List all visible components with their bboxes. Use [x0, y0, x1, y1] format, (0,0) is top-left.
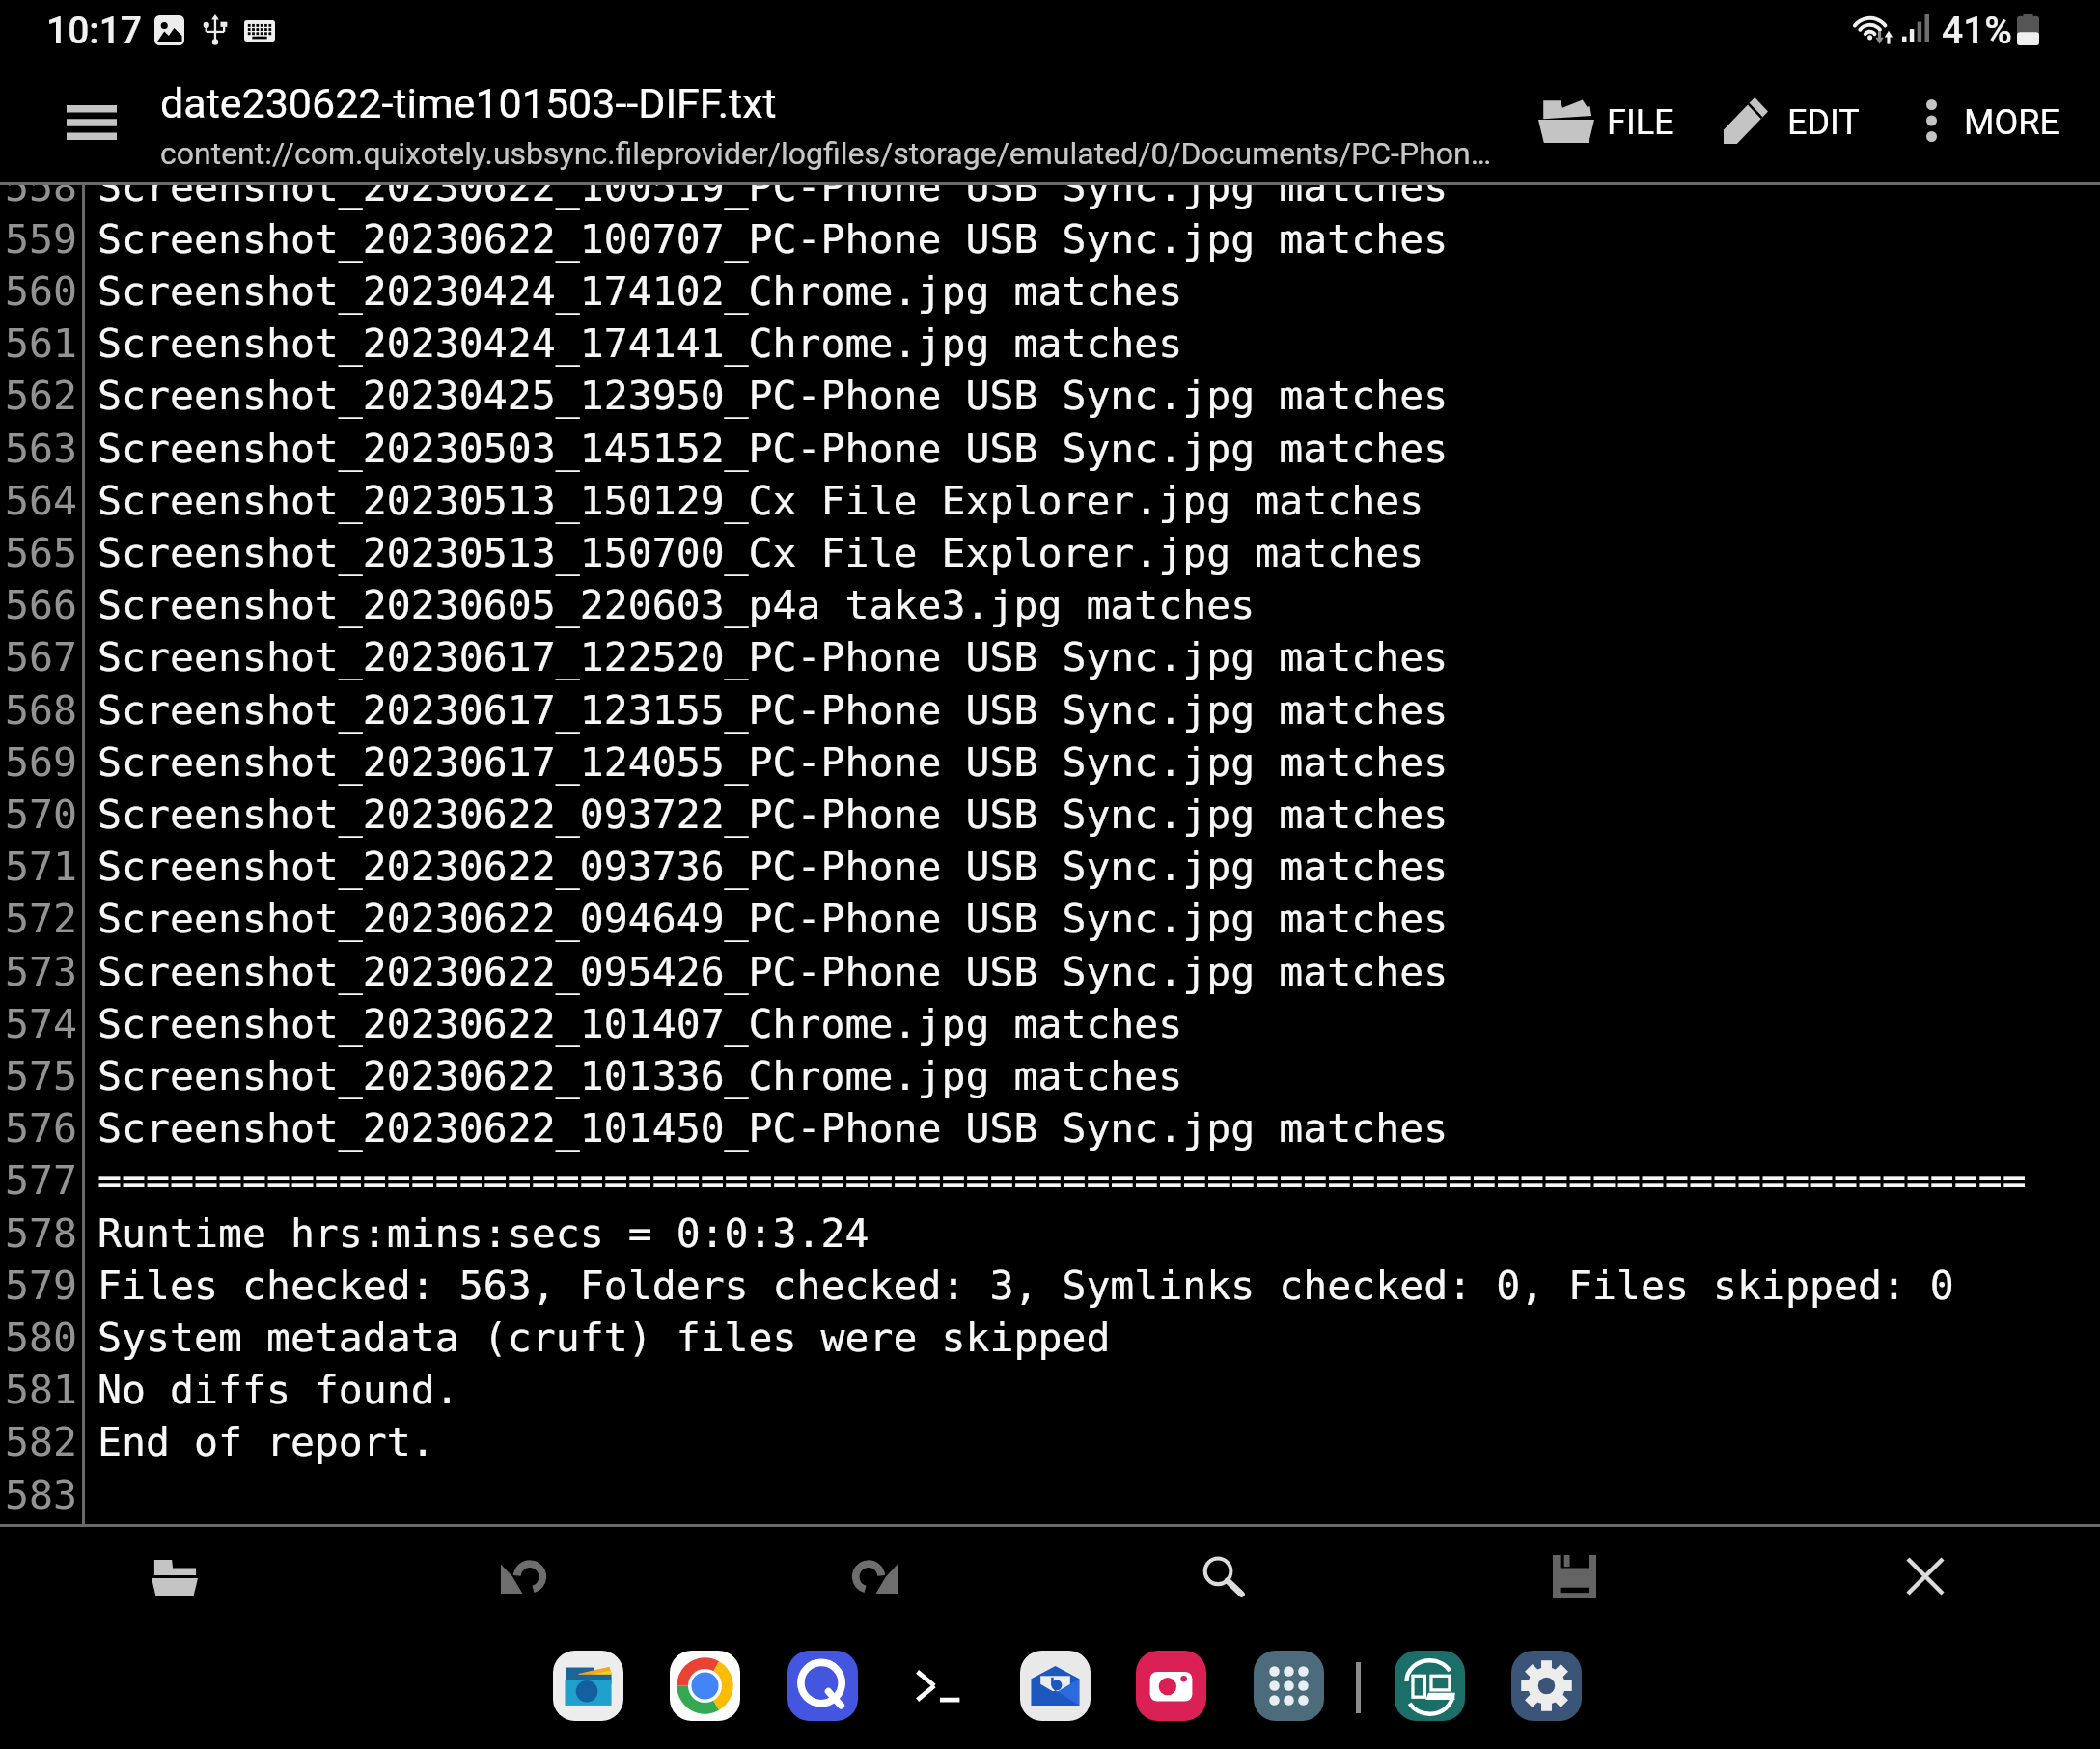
button[interactable]: Settings: [1511, 1651, 1582, 1721]
button[interactable]: Camera: [1136, 1651, 1206, 1721]
staticText: 563: [2, 425, 77, 471]
staticText: 583: [2, 1471, 77, 1517]
staticText: Screenshot_20230622_100519_PC-Phone USB …: [97, 185, 1449, 209]
staticText: Screenshot_20230503_145152_PC-Phone USB …: [97, 425, 1449, 471]
staticText: Screenshot_20230617_122520_PC-Phone USB …: [97, 633, 1449, 680]
staticText: Screenshot_20230622_101336_Chrome.jpg ma…: [97, 1052, 1183, 1098]
staticText: 559: [2, 215, 77, 262]
staticText: 560: [2, 267, 77, 314]
button[interactable]: Undo: [349, 1527, 699, 1625]
staticText: 567: [2, 633, 77, 680]
staticText: Screenshot_20230513_150700_Cx File Explo…: [97, 529, 1424, 575]
staticText: Screenshot_20230424_174102_Chrome.jpg ma…: [97, 267, 1183, 314]
button[interactable]: Mail: [1020, 1651, 1091, 1721]
staticText: 41%: [1942, 9, 2012, 53]
button[interactable]: 558: [0, 185, 2100, 1524]
staticText: 582: [2, 1418, 77, 1464]
button[interactable]: FILE: [1538, 79, 1674, 162]
staticText: Screenshot_20230424_174141_Chrome.jpg ma…: [97, 319, 1183, 366]
button[interactable]: USB Sync: [1395, 1651, 1465, 1721]
staticText: EDIT: [1787, 102, 1860, 143]
staticText: Screenshot_20230622_101407_Chrome.jpg ma…: [97, 1000, 1183, 1046]
button[interactable]: Terminal: [903, 1651, 974, 1721]
staticText: ========================================…: [97, 1156, 2027, 1203]
button[interactable]: Quixotely: [787, 1651, 858, 1721]
staticText: Screenshot_20230622_100707_PC-Phone USB …: [97, 215, 1449, 262]
staticText: 576: [2, 1104, 77, 1151]
staticText: Screenshot_20230513_150129_Cx File Explo…: [97, 477, 1424, 523]
staticText: 575: [2, 1052, 77, 1098]
staticText: 578: [2, 1209, 77, 1256]
staticText: 562: [2, 372, 77, 418]
staticText: Files checked: 563, Folders checked: 3, …: [97, 1262, 1954, 1308]
staticText: Screenshot_20230605_220603_p4a take3.jpg…: [97, 581, 1256, 627]
staticText: Screenshot_20230622_094649_PC-Phone USB …: [97, 895, 1449, 941]
button[interactable]: Close: [1750, 1527, 2100, 1625]
staticText: 568: [2, 686, 77, 733]
staticText: 577: [2, 1156, 77, 1203]
staticText: 574: [2, 1000, 77, 1046]
staticText: Screenshot_20230425_123950_PC-Phone USB …: [97, 372, 1449, 418]
staticText: 561: [2, 319, 77, 366]
staticText: 558: [2, 185, 77, 209]
staticText: 10:17: [46, 9, 143, 53]
button[interactable]: Cx File Explorer: [553, 1651, 623, 1721]
staticText: content://com.quixotely.usbsync.fileprov…: [160, 135, 1492, 172]
staticText: Screenshot_20230622_101450_PC-Phone USB …: [97, 1104, 1449, 1151]
button[interactable]: Open: [0, 1527, 349, 1625]
staticText: Screenshot_20230622_093736_PC-Phone USB …: [97, 843, 1449, 889]
staticText: 571: [2, 843, 77, 889]
button[interactable]: Chrome: [670, 1651, 740, 1721]
button[interactable]: MORE: [1926, 79, 2059, 162]
staticText: 565: [2, 529, 77, 575]
staticText: date230622-time101503--DIFF.txt: [160, 79, 777, 127]
staticText: 569: [2, 738, 77, 785]
staticText: Screenshot_20230622_095426_PC-Phone USB …: [97, 948, 1449, 994]
staticText: No diffs found.: [97, 1366, 459, 1412]
staticText: System metadata (cruft) files were skipp…: [97, 1314, 1111, 1360]
staticText: 580: [2, 1314, 77, 1360]
staticText: 566: [2, 581, 77, 627]
button[interactable]: Search: [1049, 1527, 1399, 1625]
staticText: 564: [2, 477, 77, 523]
button[interactable]: Apps: [1254, 1651, 1324, 1721]
staticText: 579: [2, 1262, 77, 1308]
staticText: MORE: [1964, 102, 2059, 143]
staticText: Screenshot_20230617_123155_PC-Phone USB …: [97, 686, 1449, 733]
staticText: 581: [2, 1366, 77, 1412]
staticText: End of report.: [97, 1418, 435, 1464]
staticText: Screenshot_20230617_124055_PC-Phone USB …: [97, 738, 1449, 785]
staticText: 573: [2, 948, 77, 994]
button[interactable]: Menu: [39, 77, 145, 168]
button[interactable]: EDIT: [1724, 79, 1860, 162]
button[interactable]: Redo: [699, 1527, 1049, 1625]
staticText: Runtime hrs:mins:secs = 0:0:3.24: [97, 1209, 870, 1256]
button[interactable]: Save: [1399, 1527, 1750, 1625]
staticText: FILE: [1607, 102, 1674, 143]
staticText: 572: [2, 895, 77, 941]
staticText: Screenshot_20230622_093722_PC-Phone USB …: [97, 791, 1449, 837]
staticText: 570: [2, 791, 77, 837]
